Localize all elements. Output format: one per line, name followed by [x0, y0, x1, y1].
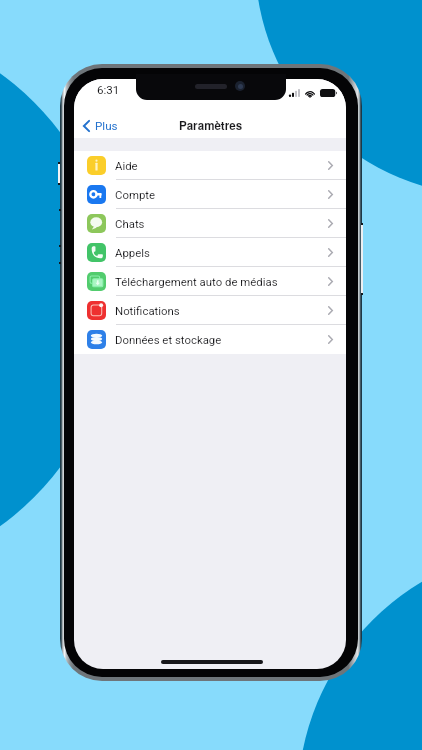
button[interactable]: Chats [74, 209, 346, 238]
staticText: Téléchargement auto de médias [115, 275, 278, 288]
staticText: Chats [115, 217, 145, 230]
staticText: Appels [115, 246, 150, 259]
button[interactable]: Données et stockage [74, 325, 346, 354]
staticText: Notifications [115, 304, 180, 317]
staticText: Plus [95, 119, 118, 133]
button[interactable]: Aide [74, 151, 346, 180]
button[interactable]: Plus [77, 114, 124, 138]
staticText: 6:31 [97, 83, 120, 97]
staticText: Aide [115, 159, 138, 172]
staticText: Compte [115, 188, 156, 201]
button[interactable]: Téléchargement auto de médias [74, 267, 346, 296]
button[interactable]: Appels [74, 238, 346, 267]
staticText: Données et stockage [115, 333, 222, 346]
button[interactable]: Notifications [74, 296, 346, 325]
button[interactable]: Compte [74, 180, 346, 209]
staticText: Paramètres [179, 117, 243, 134]
